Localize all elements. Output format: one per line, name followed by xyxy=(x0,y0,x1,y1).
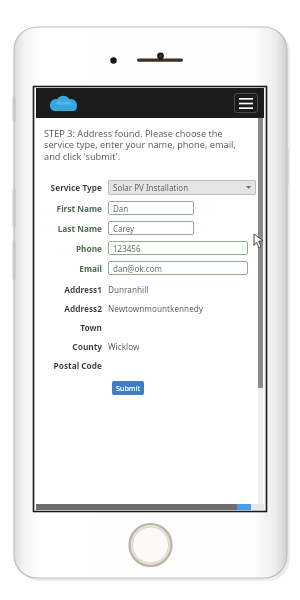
staticText: Dunranhill xyxy=(108,284,149,295)
button[interactable]: Dan xyxy=(108,201,194,215)
staticText: Email xyxy=(79,263,102,274)
staticText: Solar PV Installation xyxy=(113,182,189,193)
staticText: First Name xyxy=(56,203,102,214)
staticText: Wicklow xyxy=(108,341,140,352)
staticText: Last Name xyxy=(57,223,102,234)
staticText: 123456 xyxy=(113,243,141,254)
staticText: Address2 xyxy=(64,303,102,314)
button[interactable]: Solar PV Installation xyxy=(108,180,256,195)
staticText: Dan xyxy=(113,203,129,214)
button[interactable]: dan@ok.com xyxy=(108,261,248,275)
staticText: dan@ok.com xyxy=(113,263,162,274)
staticText: Submit xyxy=(116,383,140,393)
staticText: STEP 3: Address found. Please choose the… xyxy=(44,127,250,163)
staticText: Postal Code xyxy=(53,360,102,371)
staticText: Carey xyxy=(113,223,135,234)
staticText: Service Type xyxy=(50,182,102,193)
button[interactable]: Carey xyxy=(108,221,194,235)
button[interactable]: Menu xyxy=(234,93,258,113)
staticText: County xyxy=(72,341,102,352)
staticText: Town xyxy=(80,322,102,333)
button[interactable]: 123456 xyxy=(108,241,248,255)
button[interactable]: Home logo xyxy=(48,95,80,112)
button[interactable]: Submit xyxy=(112,381,144,395)
staticText: Phone xyxy=(75,243,102,254)
staticText: Newtownmountkennedy xyxy=(108,303,203,314)
staticText: Address1 xyxy=(64,284,102,295)
